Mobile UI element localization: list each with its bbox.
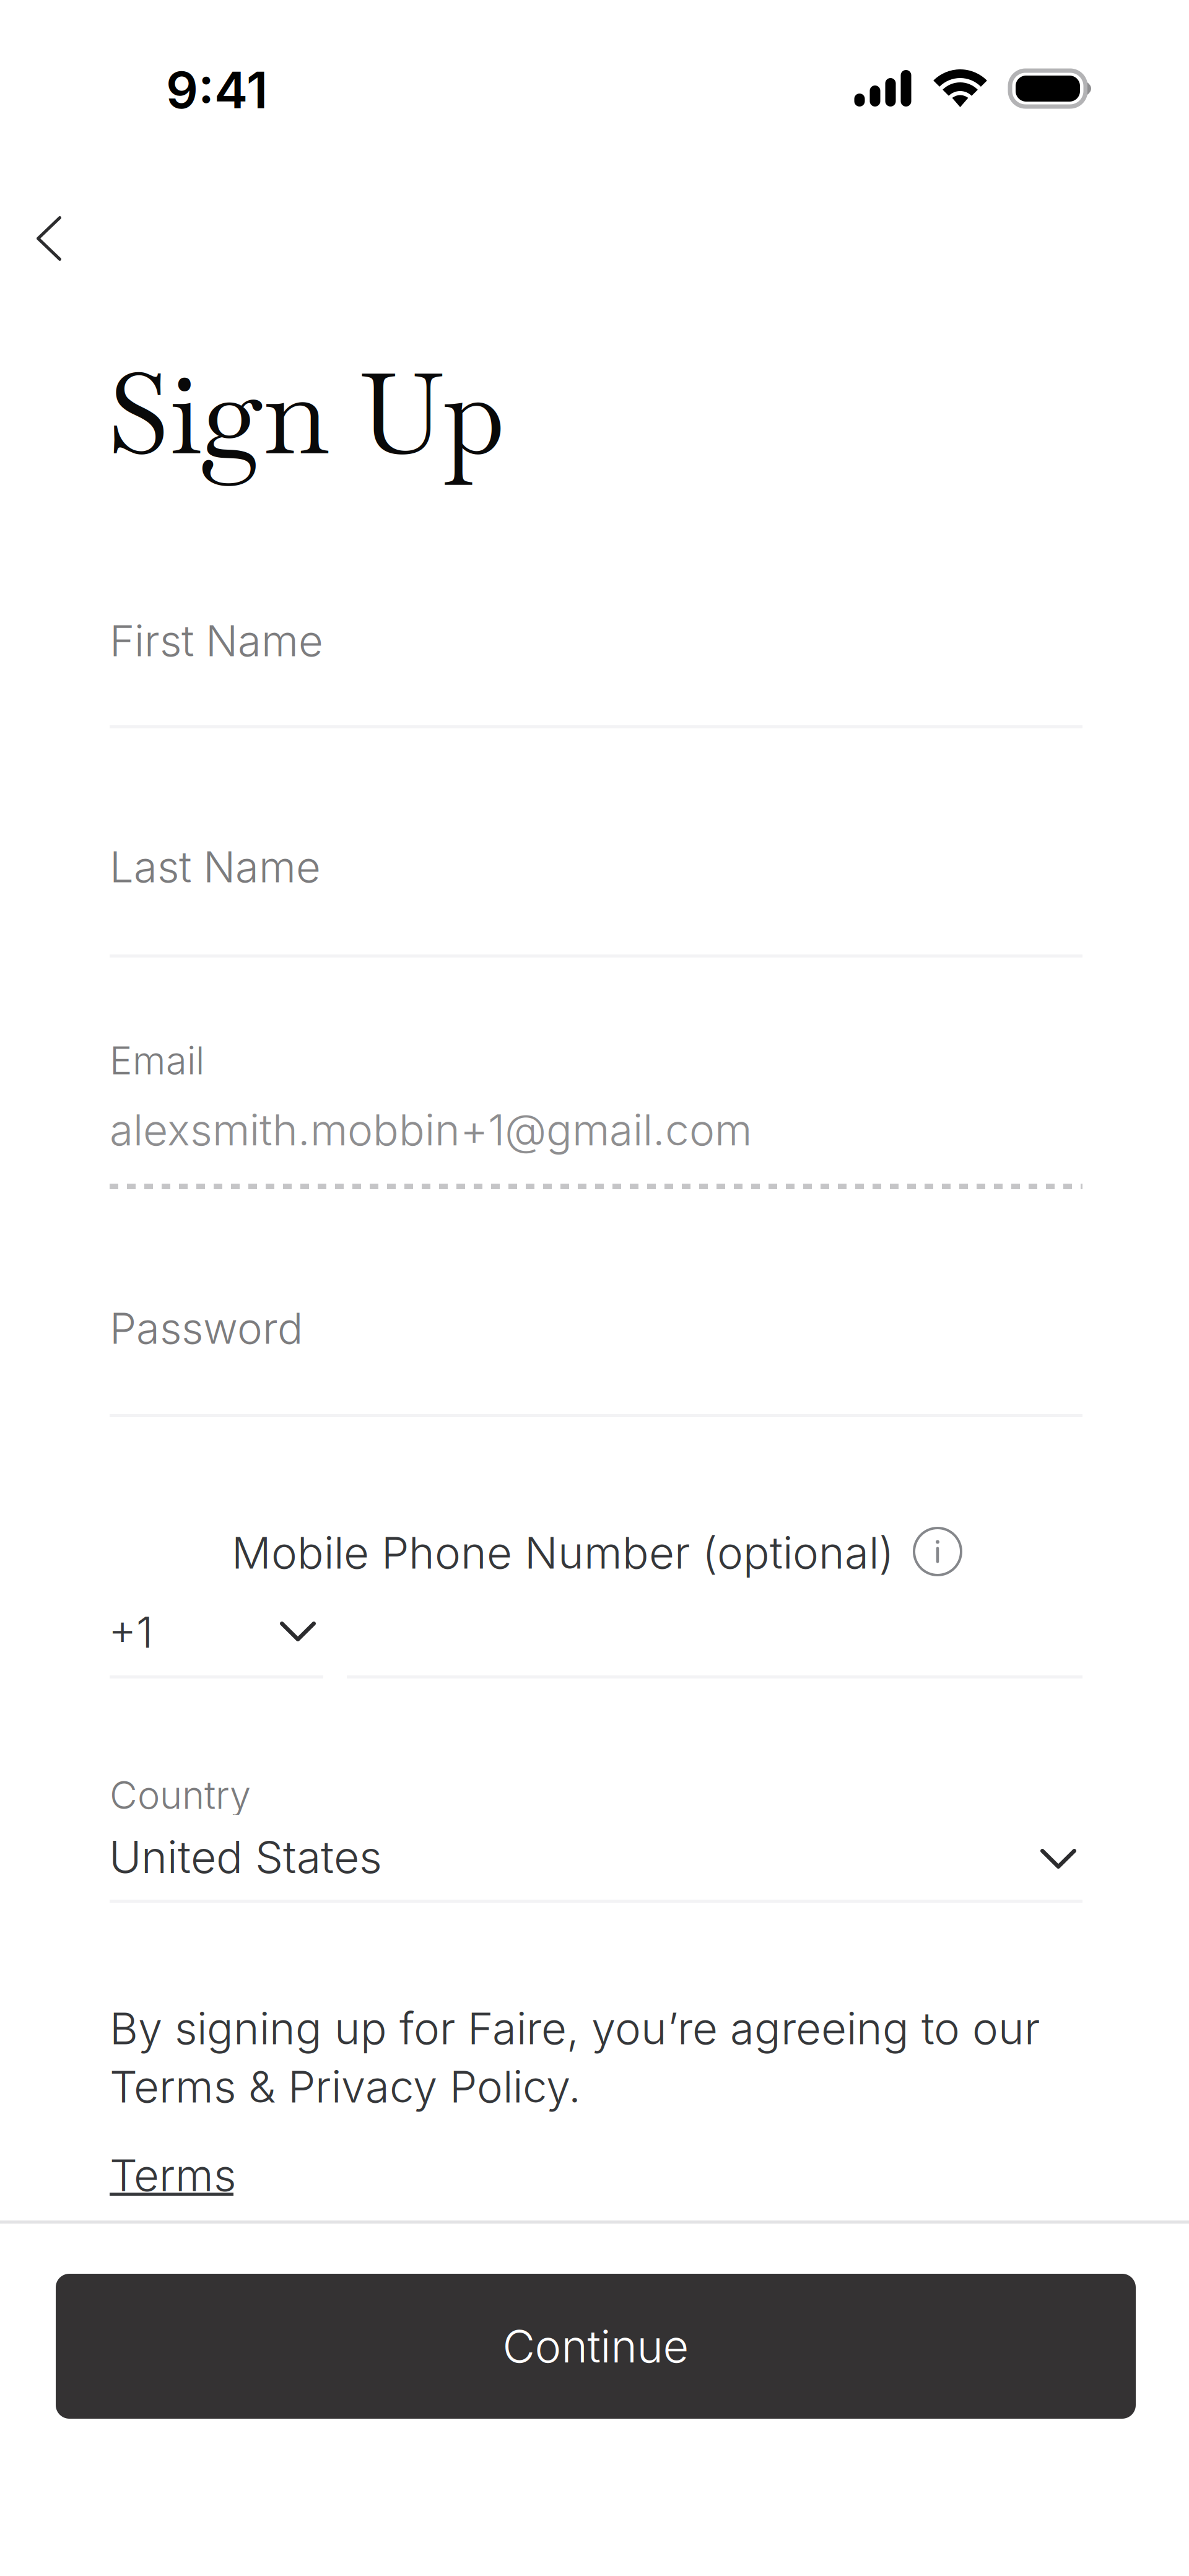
staticText: Mobile Phone Number (optional) — [232, 1526, 894, 1579]
staticText: Terms & Privacy Policy. — [110, 2060, 581, 2113]
staticText: +1 — [108, 1606, 153, 1658]
staticText: 9:41 — [166, 59, 268, 120]
staticText: Sign Up — [107, 342, 505, 486]
staticText: alexsmith.mobbin+1@gmail.com — [110, 1104, 752, 1156]
staticText: United States — [109, 1830, 382, 1884]
staticText: First Name — [110, 615, 323, 667]
button[interactable]: Terms — [110, 2149, 237, 2208]
staticText: By signing up for Faire, you’re agreeing… — [110, 2002, 1040, 2055]
staticText: Terms — [110, 2149, 236, 2202]
staticText: Continue — [503, 2319, 689, 2373]
staticText: Email — [110, 1037, 204, 1083]
staticText: Last Name — [110, 841, 321, 893]
staticText: Password — [110, 1303, 303, 1354]
button[interactable]: Back — [0, 186, 110, 290]
staticText: Country — [110, 1772, 251, 1818]
button[interactable]: Country calling code, +1 — [110, 1589, 323, 1675]
button[interactable]: Country, United States — [110, 1815, 1082, 1897]
button[interactable]: Continue — [56, 2274, 1136, 2419]
